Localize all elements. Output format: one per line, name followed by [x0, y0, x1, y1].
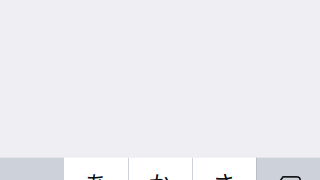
staticText: か — [148, 166, 171, 180]
staticText: あ — [84, 166, 107, 180]
button[interactable]: Delete — [256, 158, 320, 180]
staticText: さ — [212, 166, 235, 180]
button[interactable]: さ — [192, 158, 256, 180]
button[interactable]: か — [128, 158, 192, 180]
button[interactable]: あ — [64, 158, 128, 180]
